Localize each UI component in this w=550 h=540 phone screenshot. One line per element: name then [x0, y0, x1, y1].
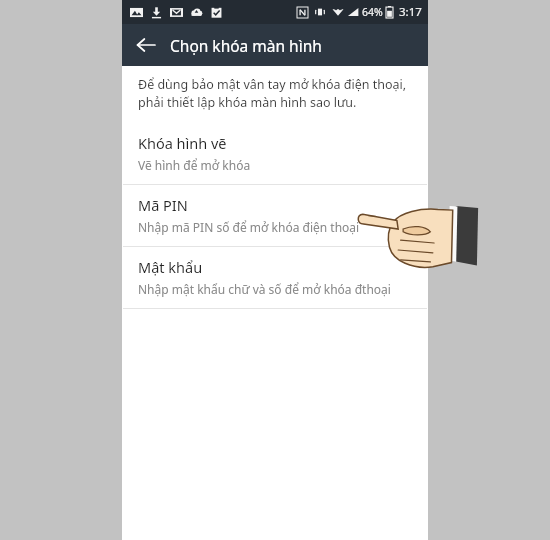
staticText: Khóa hình vẽ	[138, 133, 227, 153]
staticText: Chọn khóa màn hình	[170, 35, 322, 56]
staticText: Để dùng bảo mật vân tay mở khóa điện tho…	[138, 76, 407, 111]
button[interactable]: Mã PIN	[122, 185, 428, 246]
button[interactable]: Khóa hình vẽ	[122, 123, 428, 184]
staticText: Vẽ hình để mở khóa	[138, 157, 251, 173]
staticText: Nhập mật khẩu chữ và số để mở khóa đthoạ…	[138, 281, 391, 297]
staticText: Mã PIN	[138, 195, 188, 215]
staticText: Nhập mã PIN số để mở khóa điện thoại	[138, 219, 360, 235]
button[interactable]: Back	[128, 27, 164, 63]
staticText: Mật khẩu	[138, 257, 203, 277]
button[interactable]: Mật khẩu	[122, 247, 428, 308]
staticText: 3:17	[399, 4, 422, 20]
staticText: 64%	[362, 5, 383, 19]
